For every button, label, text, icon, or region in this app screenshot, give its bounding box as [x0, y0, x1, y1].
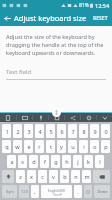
button[interactable]: r	[35, 140, 44, 153]
button[interactable]: m	[82, 170, 91, 183]
button[interactable]: v	[49, 170, 58, 183]
button[interactable]: Navigate up	[0, 10, 14, 26]
button[interactable]: .	[74, 185, 82, 198]
button[interactable]: 1	[2, 124, 11, 138]
button[interactable]: e	[24, 140, 33, 153]
staticText: o	[93, 143, 97, 150]
staticText: r	[38, 143, 41, 150]
button[interactable]: w	[13, 140, 22, 153]
staticText: m	[84, 173, 90, 180]
staticText: u	[71, 143, 75, 150]
staticText: i	[83, 143, 85, 150]
staticText: Done	[97, 189, 108, 194]
staticText: d	[32, 158, 36, 165]
button[interactable]: 7	[68, 124, 77, 138]
button[interactable]: i	[79, 140, 88, 153]
button[interactable]: Shift	[2, 170, 14, 183]
button[interactable]: j	[73, 155, 82, 168]
staticText: e	[27, 143, 31, 150]
staticText: n	[74, 173, 78, 180]
staticText: j	[77, 158, 79, 165]
button[interactable]: t	[46, 140, 55, 153]
button[interactable]: Settings menu	[49, 113, 64, 122]
button[interactable]: Keyboard settings	[81, 113, 96, 122]
button[interactable]: Emoji	[0, 113, 16, 122]
button[interactable]: 8	[79, 124, 88, 138]
button[interactable]: d	[29, 155, 38, 168]
button[interactable]: k	[84, 155, 93, 168]
button[interactable]: Done	[94, 185, 110, 198]
button[interactable]: y	[57, 140, 66, 153]
button[interactable]: Space	[41, 185, 72, 198]
button[interactable]: 2	[13, 124, 22, 138]
staticText: y	[60, 143, 63, 150]
staticText: z	[19, 173, 22, 180]
staticText: x	[30, 173, 33, 180]
staticText: Sym	[6, 189, 14, 194]
button[interactable]: 6	[57, 124, 66, 138]
button[interactable]: a	[7, 155, 16, 168]
button[interactable]: 5	[46, 124, 55, 138]
staticText: p	[104, 143, 108, 150]
button[interactable]: 123	[19, 185, 29, 198]
staticText: g	[54, 158, 58, 165]
button[interactable]: 9	[90, 124, 99, 138]
staticText: 5	[49, 128, 53, 135]
button[interactable]: Hide keyboard	[97, 113, 112, 122]
staticText: b	[63, 173, 67, 180]
button[interactable]: 4	[35, 124, 44, 138]
staticText: 8	[82, 128, 86, 135]
staticText: v	[52, 173, 55, 180]
button[interactable]: n	[71, 170, 80, 183]
button[interactable]: h	[62, 155, 71, 168]
staticText: s	[21, 158, 24, 165]
button[interactable]: q	[2, 140, 11, 153]
button[interactable]: g	[51, 155, 60, 168]
staticText: t	[50, 143, 52, 150]
staticText: Text field	[6, 68, 32, 76]
button[interactable]: Handwriting	[65, 113, 80, 122]
button[interactable]: RESET	[89, 10, 112, 26]
staticText: h	[65, 158, 69, 165]
button[interactable]: u	[68, 140, 77, 153]
staticText: 6	[60, 128, 64, 135]
staticText: l	[99, 158, 101, 165]
staticText: Adjust the size of the keyboard by dragg…	[6, 33, 106, 57]
staticText: w	[15, 143, 20, 150]
button[interactable]: c	[38, 170, 47, 183]
staticText: 3	[27, 128, 31, 135]
staticText: 1	[5, 128, 9, 135]
button[interactable]: Microphone	[33, 113, 48, 122]
staticText: English(UK)	[48, 189, 66, 193]
button[interactable]: Backspace	[93, 170, 110, 183]
button[interactable]: Text field	[6, 68, 106, 80]
button[interactable]: s	[18, 155, 27, 168]
staticText: 81%	[79, 2, 89, 9]
button[interactable]: p	[101, 140, 110, 153]
button[interactable]: Clipboard	[17, 113, 32, 122]
staticText: 4	[38, 128, 42, 135]
button[interactable]: Sym	[2, 185, 17, 198]
staticText: k	[87, 158, 90, 165]
button[interactable]: f	[40, 155, 49, 168]
staticText: a	[10, 158, 14, 165]
button[interactable]: b	[60, 170, 69, 183]
button[interactable]: o	[90, 140, 99, 153]
staticText: c	[41, 173, 44, 180]
staticText: .	[77, 188, 79, 195]
staticText: 123	[21, 189, 28, 194]
staticText: ,	[34, 188, 36, 195]
staticText: 7	[71, 128, 75, 135]
button[interactable]: z	[16, 170, 25, 183]
button[interactable]: x	[27, 170, 36, 183]
button[interactable]: l	[95, 155, 104, 168]
button[interactable]: Emoji	[84, 185, 92, 198]
button[interactable]: ,	[31, 185, 39, 198]
staticText: 2	[16, 128, 20, 135]
button[interactable]: 0	[101, 124, 110, 138]
staticText: 0	[104, 128, 108, 135]
button[interactable]: 3	[24, 124, 33, 138]
staticText: RESET	[93, 15, 108, 22]
button[interactable]: Drag handle to resize keyboard	[52, 108, 61, 117]
staticText: f	[44, 158, 46, 165]
